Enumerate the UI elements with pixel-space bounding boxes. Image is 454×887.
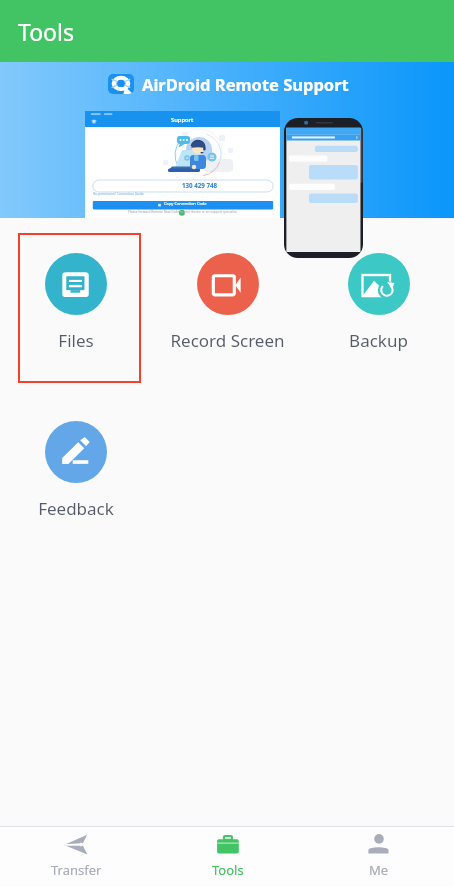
staticText: Me bbox=[369, 861, 389, 879]
staticText: Please forward Remote Now Code to your d… bbox=[128, 210, 237, 214]
button[interactable]: Transfer bbox=[0, 827, 152, 887]
button[interactable]: Feedback bbox=[0, 402, 152, 570]
staticText: 130 429 748 bbox=[182, 181, 218, 189]
staticText: No permission? Connection Guide bbox=[93, 192, 144, 196]
staticText: Support bbox=[171, 116, 194, 124]
staticText: Backup bbox=[349, 329, 408, 352]
button[interactable]: Files bbox=[0, 234, 152, 402]
staticText: Tools bbox=[212, 861, 244, 879]
staticText: Record Screen bbox=[170, 329, 285, 352]
staticText: Files bbox=[58, 329, 94, 352]
staticText: Transfer bbox=[51, 861, 102, 879]
staticText: Copy Connection Code bbox=[164, 201, 207, 206]
staticText: AirDroid Remote Support bbox=[142, 73, 349, 95]
staticText: Feedback bbox=[38, 497, 114, 520]
button[interactable]: Backup bbox=[303, 234, 454, 402]
button[interactable]: AirDroid Remote Support bbox=[0, 62, 454, 218]
button[interactable]: Tools bbox=[152, 827, 303, 887]
staticText: Tools bbox=[18, 16, 74, 47]
button[interactable]: Record Screen bbox=[152, 234, 303, 402]
button[interactable]: Me bbox=[303, 827, 454, 887]
